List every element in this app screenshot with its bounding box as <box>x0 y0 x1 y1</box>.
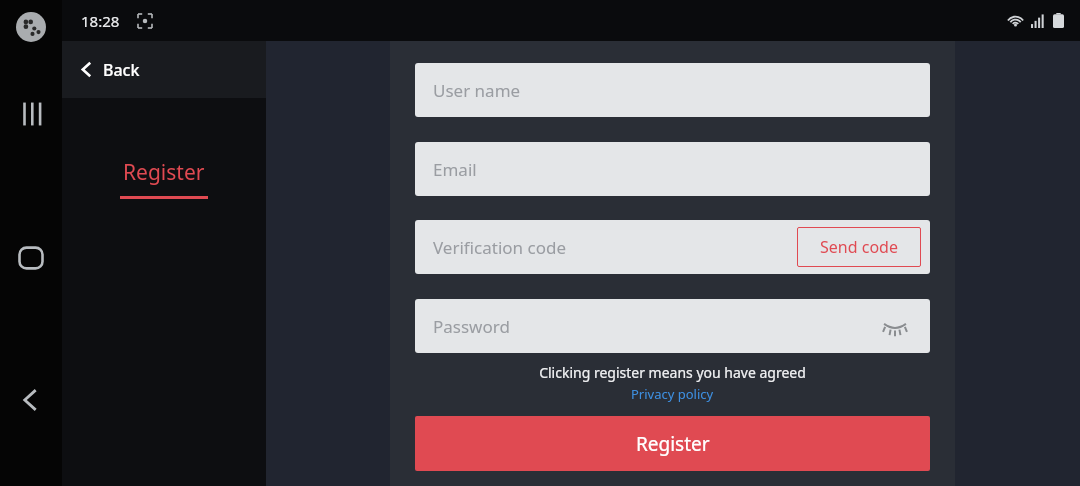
button[interactable]: Back <box>62 41 266 98</box>
button[interactable]: Privacy policy <box>625 384 720 404</box>
button[interactable]: Back <box>9 378 53 422</box>
button[interactable]: Send code <box>797 227 921 267</box>
staticText: Send code <box>820 236 898 258</box>
staticText: Verification code <box>433 236 567 259</box>
button[interactable]: Verification code <box>415 220 930 274</box>
staticText: Register <box>123 158 205 187</box>
staticText: Password <box>433 315 510 338</box>
staticText: Register <box>636 431 710 457</box>
button[interactable]: Register <box>112 154 216 203</box>
staticText: Clicking register means you have agreed <box>415 363 930 382</box>
button[interactable]: Email <box>415 142 930 196</box>
button[interactable]: Game tools <box>12 8 50 46</box>
staticText: Back <box>103 59 140 81</box>
button[interactable]: Register <box>415 416 930 471</box>
staticText: Email <box>433 158 477 181</box>
button[interactable]: User name <box>415 63 930 117</box>
button[interactable]: Password <box>415 299 930 353</box>
staticText: 18:28 <box>81 11 120 31</box>
button[interactable]: Home <box>9 236 53 280</box>
staticText: User name <box>433 79 521 102</box>
button[interactable]: Recent apps <box>9 92 53 136</box>
button[interactable]: Show password <box>878 309 912 343</box>
